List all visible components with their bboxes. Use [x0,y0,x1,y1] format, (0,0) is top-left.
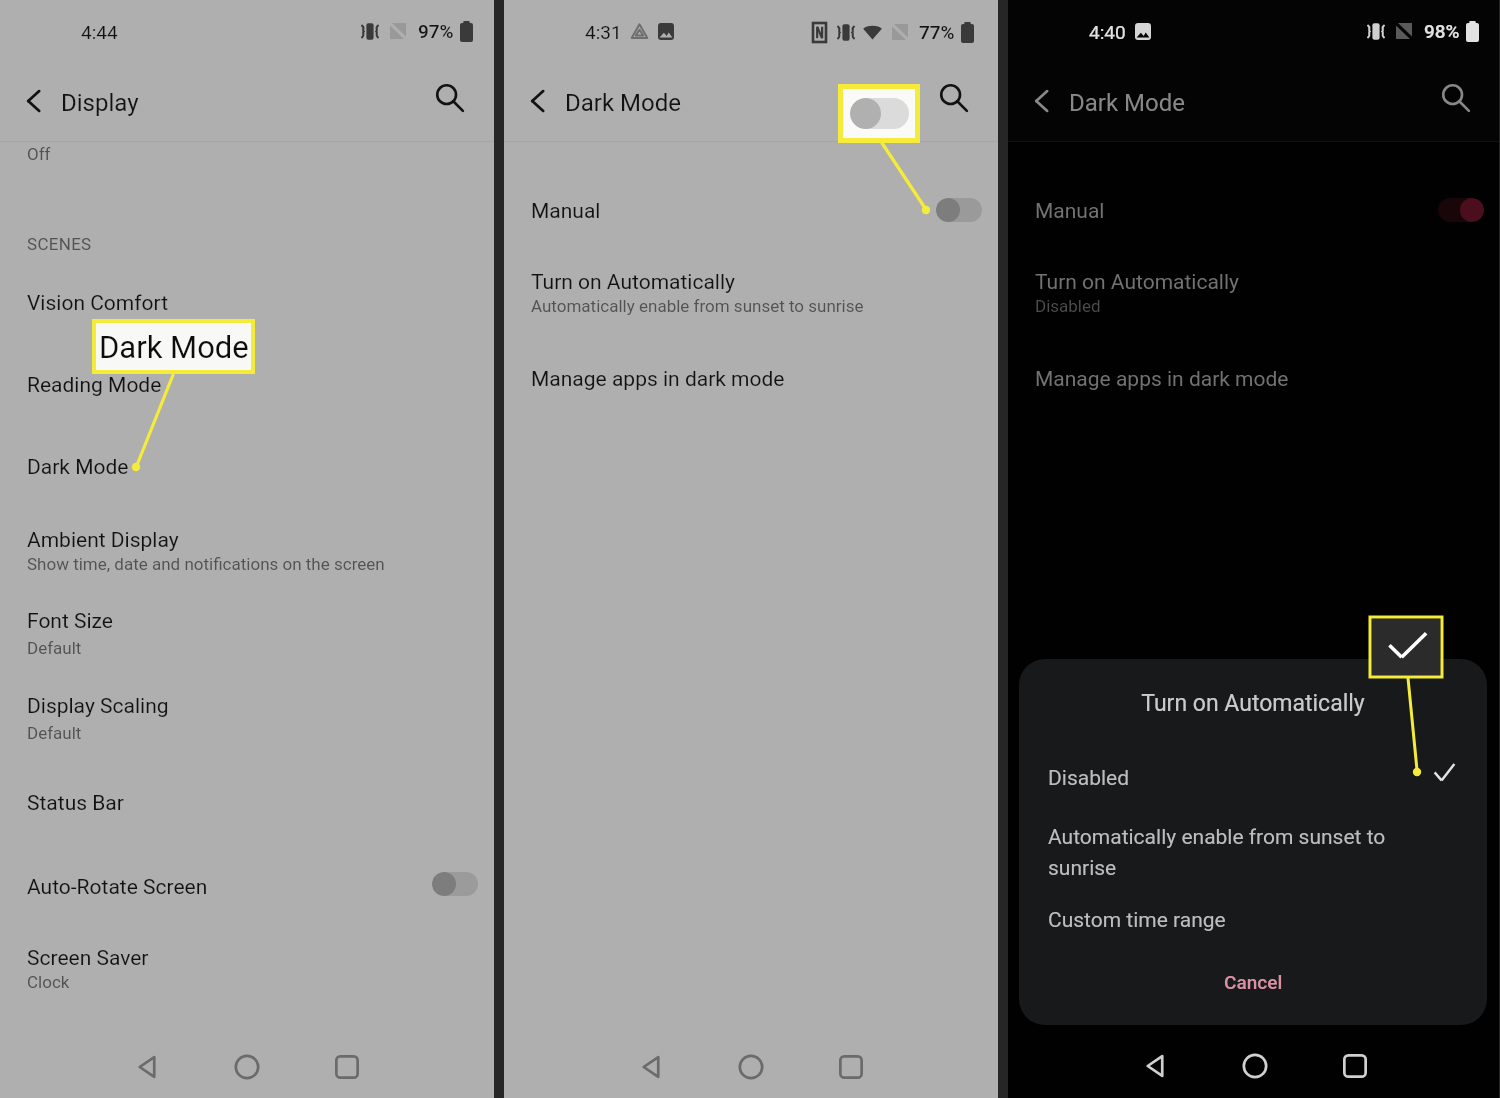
staticText: Vision Comfort [27,291,169,316]
staticText: Manage apps in dark mode [531,367,785,392]
button[interactable]: Home [1233,1044,1277,1088]
button[interactable]: Home [225,1045,269,1089]
button[interactable]: Auto-Rotate Screen toggle [432,872,478,896]
button[interactable]: Custom time range [1019,905,1487,951]
button[interactable]: Turn on Automatically [1008,267,1499,329]
button[interactable]: Manual toggle [1438,198,1484,222]
button[interactable]: Turn on Automatically [504,267,998,329]
button[interactable]: Recents [325,1045,369,1089]
staticText: Custom time range [1048,908,1226,933]
button[interactable]: Cancel [1019,971,1487,1011]
staticText: Font Size [27,609,114,634]
staticText: Turn on Automatically [1035,270,1240,295]
button[interactable]: Back [630,1045,674,1089]
staticText: Default [27,638,82,658]
staticText: SCENES [27,234,92,254]
button[interactable]: Navigate up [524,87,552,115]
staticText: Turn on Automatically [1019,690,1487,717]
staticText: Off [27,144,51,164]
button[interactable]: Manual [1008,196,1499,238]
button[interactable]: Dark Mode [0,452,494,494]
staticText: Cancel [1224,971,1283,993]
button[interactable]: Auto-Rotate Screen [0,872,494,914]
button[interactable]: Manage apps in dark mode [504,364,998,406]
staticText: Reading Mode [27,373,162,398]
button[interactable]: Automatically enable from sunset to sunr… [1019,822,1487,904]
staticText: 4:31 [585,21,622,43]
button[interactable]: Recents [829,1045,873,1089]
staticText: Turn on Automatically [531,270,736,295]
button[interactable]: Navigate up [20,87,48,115]
button[interactable]: Home [729,1045,773,1089]
staticText: Disabled [1035,296,1101,316]
staticText: Display [61,89,139,117]
staticText: Manage apps in dark mode [1035,367,1289,392]
button[interactable]: Vision Comfort [0,288,494,330]
staticText: Default [27,723,82,743]
button[interactable]: Search [936,80,972,116]
staticText: 4:40 [1089,21,1126,43]
button[interactable]: Search [432,80,468,116]
button[interactable]: Back [1134,1044,1178,1088]
staticText: Dark Mode [565,89,681,117]
staticText: Screen Saver [27,946,149,971]
staticText: 77% [919,21,955,43]
button[interactable]: Search [1438,80,1474,116]
button[interactable]: Back [126,1045,170,1089]
staticText: Dark Mode [27,455,129,480]
staticText: Manual [531,199,601,224]
button[interactable]: Reading Mode [0,370,494,412]
staticText: 97% [418,20,454,42]
button[interactable]: Recents [1333,1044,1377,1088]
button[interactable]: Font Size [0,606,494,668]
button[interactable]: Screen Saver [0,943,494,1005]
staticText: Display Scaling [27,694,169,719]
staticText: Disabled [1048,766,1130,791]
staticText: Dark Mode [99,329,249,365]
staticText: Automatically enable from sunset to sunr… [1048,825,1393,880]
staticText: 4:44 [81,21,118,43]
button[interactable]: Manual toggle [936,198,982,222]
staticText: 98% [1424,20,1460,42]
button[interactable]: Display Scaling [0,691,494,753]
button[interactable]: Status Bar [0,788,494,830]
staticText: Clock [27,972,70,992]
staticText: Automatically enable from sunset to sunr… [531,296,864,316]
button[interactable]: Manual [504,196,998,238]
button[interactable]: Disabled [1019,763,1487,809]
button[interactable]: Manage apps in dark mode [1008,364,1499,406]
staticText: Auto-Rotate Screen [27,875,208,900]
staticText: Ambient Display [27,528,179,553]
button[interactable]: Navigate up [1028,87,1056,115]
staticText: Show time, date and notifications on the… [27,554,385,574]
button[interactable]: Ambient Display [0,525,494,587]
staticText: Manual [1035,199,1105,224]
staticText: Status Bar [27,791,124,816]
staticText: Dark Mode [1069,89,1185,117]
